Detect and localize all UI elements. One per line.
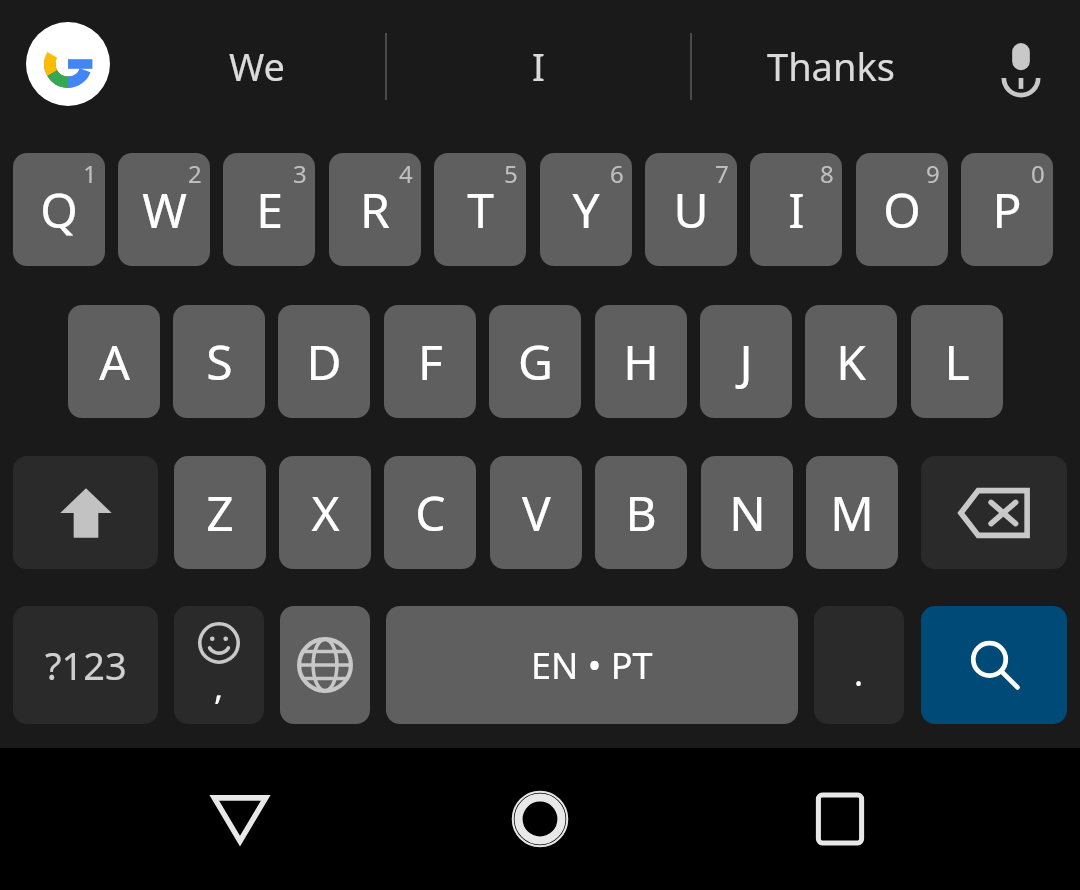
button[interactable]: We (130, 14, 385, 118)
button[interactable]: F (384, 305, 476, 418)
staticText: 4 (399, 157, 413, 190)
button[interactable]: S (173, 305, 265, 418)
staticText: A (99, 329, 130, 394)
staticText: 1 (83, 157, 97, 190)
staticText: B (625, 480, 657, 545)
button[interactable]: H (595, 305, 687, 418)
button[interactable]: I (750, 153, 842, 266)
staticText: P (992, 177, 1022, 242)
staticText: O (883, 177, 921, 242)
button[interactable]: Home (480, 748, 600, 890)
button[interactable]: L (911, 305, 1003, 418)
button[interactable]: A (68, 305, 160, 418)
staticText: W (142, 177, 187, 242)
staticText: 7 (715, 157, 729, 190)
button[interactable]: J (700, 305, 792, 418)
button[interactable]: C (384, 456, 476, 569)
staticText: U (673, 177, 709, 242)
staticText: F (418, 329, 443, 394)
button[interactable]: EN • PT (386, 606, 798, 724)
staticText: X (311, 480, 340, 545)
button[interactable]: N (701, 456, 793, 569)
button[interactable]: D (278, 305, 370, 418)
staticText: G (518, 329, 553, 394)
staticText: . (854, 650, 864, 696)
button[interactable]: Recent apps (780, 748, 900, 890)
button[interactable]: P (961, 153, 1053, 266)
button[interactable]: Y (540, 153, 632, 266)
staticText: We (229, 40, 286, 92)
staticText: EN • PT (531, 641, 653, 690)
staticText: L (944, 329, 970, 394)
button[interactable]: O (856, 153, 948, 266)
button[interactable]: Emoji (174, 606, 264, 724)
button[interactable]: Backspace (921, 456, 1067, 569)
button[interactable]: Search (921, 606, 1067, 724)
button[interactable]: W (118, 153, 210, 266)
button[interactable]: V (490, 456, 582, 569)
staticText: 2 (188, 157, 202, 190)
button[interactable]: Shift (13, 456, 158, 569)
staticText: Y (572, 177, 600, 242)
staticText: 6 (610, 157, 624, 190)
button[interactable]: ?123 (13, 606, 158, 724)
button[interactable]: Voice input (975, 20, 1067, 112)
button[interactable]: X (279, 456, 371, 569)
staticText: R (360, 177, 390, 242)
staticText: E (256, 177, 283, 242)
staticText: J (739, 329, 753, 394)
staticText: H (623, 329, 659, 394)
staticText: 5 (504, 157, 518, 190)
staticText: ?123 (45, 639, 127, 691)
button[interactable]: I (386, 14, 690, 118)
button[interactable]: Thanks (691, 14, 971, 118)
staticText: M (830, 480, 874, 545)
staticText: K (836, 329, 866, 394)
staticText: T (467, 177, 494, 242)
button[interactable]: B (595, 456, 687, 569)
button[interactable]: K (805, 305, 897, 418)
staticText: Q (40, 177, 78, 242)
staticText: 8 (820, 157, 834, 190)
button[interactable]: . (814, 606, 904, 724)
staticText: 9 (926, 157, 940, 190)
button[interactable]: Q (13, 153, 105, 266)
staticText: Z (206, 480, 234, 545)
staticText: I (532, 40, 545, 92)
button[interactable]: T (434, 153, 526, 266)
staticText: 3 (293, 157, 307, 190)
staticText: C (415, 480, 446, 545)
button[interactable]: R (329, 153, 421, 266)
button[interactable]: U (645, 153, 737, 266)
staticText: 0 (1031, 157, 1045, 190)
button[interactable]: E (223, 153, 315, 266)
button[interactable]: Change language (280, 606, 370, 724)
staticText: D (306, 329, 342, 394)
button[interactable]: Hide keyboard (180, 748, 300, 890)
staticText: I (788, 177, 805, 242)
button[interactable]: Google (26, 22, 110, 106)
button[interactable]: Z (174, 456, 266, 569)
staticText: N (729, 480, 766, 545)
button[interactable]: M (806, 456, 898, 569)
staticText: Thanks (767, 40, 895, 92)
staticText: V (522, 480, 551, 545)
staticText: S (206, 329, 233, 394)
button[interactable]: G (489, 305, 581, 418)
staticText: , (214, 664, 224, 710)
